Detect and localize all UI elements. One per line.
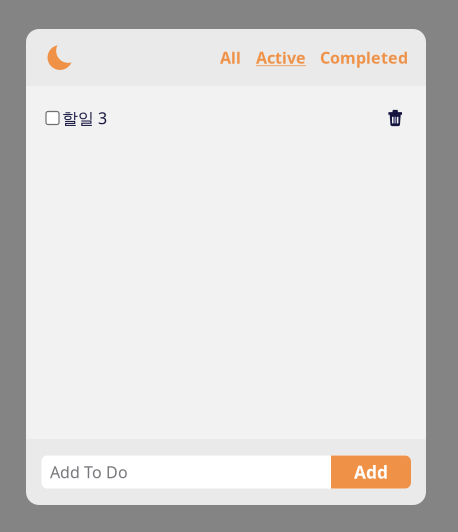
staticText: Add <box>354 460 388 483</box>
button[interactable]: Delete to do <box>388 110 402 126</box>
button[interactable]: Completed <box>320 47 408 68</box>
staticText: Add To Do <box>50 461 128 483</box>
staticText: Active <box>256 47 306 68</box>
staticText: Completed <box>320 47 408 68</box>
button[interactable]: Toggle dark mode <box>47 44 73 70</box>
button[interactable]: Active <box>256 47 306 68</box>
staticText: 할일 3 <box>62 107 107 129</box>
button[interactable]: Add <box>331 455 411 488</box>
button[interactable]: Add To Do text field <box>41 455 331 488</box>
button[interactable]: 할일 3 <box>46 107 107 129</box>
staticText: All <box>220 47 241 68</box>
button[interactable]: All <box>220 47 241 68</box>
